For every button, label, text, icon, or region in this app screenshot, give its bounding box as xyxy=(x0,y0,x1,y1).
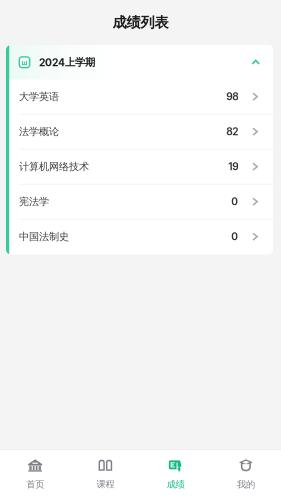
staticText: 大学英语 xyxy=(19,90,59,103)
staticText: 成绩列表 xyxy=(112,14,168,31)
staticText: 宪法学 xyxy=(19,195,49,208)
staticText: 法学概论 xyxy=(19,125,59,138)
button[interactable]: 中国法制史 xyxy=(6,219,273,254)
button[interactable]: 成绩 xyxy=(140,449,211,500)
staticText: 课程 xyxy=(96,478,114,490)
staticText: 2024上学期 xyxy=(39,56,95,69)
button[interactable]: 法学概论 xyxy=(6,114,273,149)
button[interactable]: 宪法学 xyxy=(6,184,273,219)
button[interactable]: 大学英语 xyxy=(6,79,273,114)
button[interactable]: 2024上学期 xyxy=(6,45,273,79)
staticText: 成绩 xyxy=(167,479,185,490)
staticText: 中国法制史 xyxy=(19,230,69,243)
staticText: 0 xyxy=(231,230,238,243)
staticText: 82 xyxy=(226,125,238,138)
staticText: 计算机网络技术 xyxy=(19,160,89,173)
staticText: 0 xyxy=(231,195,238,208)
button[interactable]: 首页 xyxy=(0,449,70,500)
staticText: 首页 xyxy=(26,479,44,490)
button[interactable]: 计算机网络技术 xyxy=(6,149,273,184)
staticText: 98 xyxy=(226,90,238,103)
staticText: 19 xyxy=(228,160,238,173)
button[interactable]: 课程 xyxy=(70,449,140,500)
button[interactable]: 我的 xyxy=(211,449,281,500)
staticText: 我的 xyxy=(237,479,255,490)
